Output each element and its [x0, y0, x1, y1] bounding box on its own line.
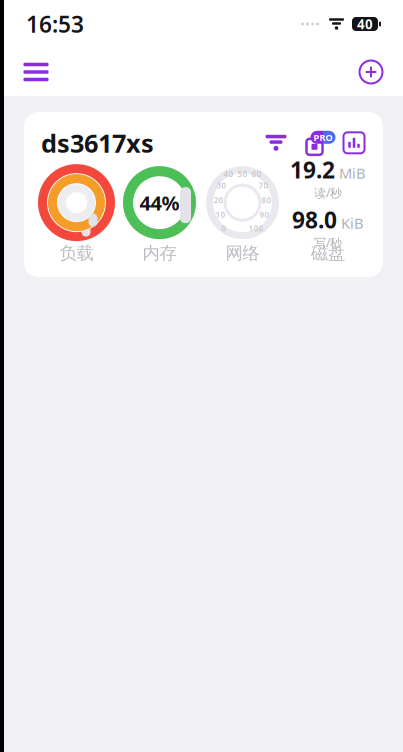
staticText: 0 — [221, 223, 226, 234]
staticText: 19.2 — [290, 155, 335, 185]
staticText: 98.0 — [292, 205, 337, 235]
staticText: 44% — [139, 189, 179, 216]
staticText: KiB — [341, 213, 364, 233]
staticText: 负载 — [59, 243, 93, 264]
staticText: 30 — [216, 180, 226, 191]
staticText: 内存 — [142, 243, 176, 264]
staticText: 20 — [213, 195, 223, 205]
staticText: 40 — [223, 169, 233, 179]
staticText: 60 — [251, 169, 261, 179]
button[interactable]: ds3617xs — [24, 112, 383, 277]
staticText: 10 — [215, 209, 225, 220]
button[interactable]: Menu — [14, 50, 58, 94]
staticText: 40 — [357, 15, 373, 33]
staticText: 70 — [258, 180, 268, 191]
button[interactable]: Add server — [349, 50, 393, 94]
staticText: 16:53 — [26, 9, 84, 39]
staticText: 50 — [237, 169, 247, 179]
staticText: 写/秒 — [314, 235, 342, 251]
staticText: ds3617xs — [41, 126, 154, 160]
staticText: 读/秒 — [314, 185, 342, 201]
staticText: 80 — [261, 195, 271, 205]
staticText: 磁盘 — [311, 243, 345, 264]
staticText: 100 — [248, 223, 263, 234]
staticText: 网络 — [225, 243, 259, 264]
staticText: MiB — [339, 163, 366, 183]
staticText: PRO — [313, 131, 332, 143]
staticText: 90 — [259, 209, 269, 220]
